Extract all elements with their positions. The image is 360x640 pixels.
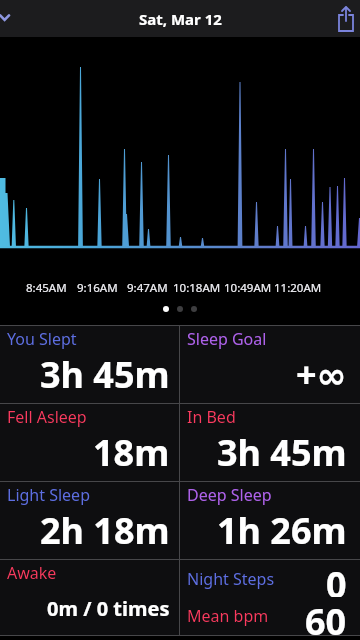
staticText: Awake [7, 562, 57, 584]
button[interactable]: You Slept [0, 326, 179, 403]
button[interactable]: Deep Sleep [180, 482, 360, 559]
staticText: 0m / 0 times [47, 595, 170, 622]
staticText: 11:20AM [274, 280, 322, 294]
staticText: In Bed [187, 406, 236, 428]
staticText: 3h 45m [40, 350, 170, 399]
staticText: 1h 26m [217, 506, 347, 555]
button[interactable]: Night Steps [180, 560, 360, 635]
staticText: Fell Asleep [7, 406, 87, 428]
button[interactable]: Light Sleep [0, 482, 179, 559]
staticText: Light Sleep [7, 484, 90, 506]
staticText: 8:45AM [26, 280, 67, 294]
staticText: 18m [93, 428, 170, 477]
staticText: Mean bpm [187, 605, 269, 627]
staticText: +∞ [296, 350, 347, 399]
button[interactable]: Sleep Goal [180, 326, 360, 403]
button[interactable]: Awake [0, 560, 179, 635]
staticText: Sat, Mar 12 [139, 9, 222, 29]
staticText: 2h 18m [40, 506, 170, 555]
button[interactable]: Fell Asleep [0, 404, 179, 481]
button[interactable]: In Bed [180, 404, 360, 481]
button[interactable] [334, 2, 358, 36]
staticText: 60 [305, 597, 347, 635]
staticText: 9:16AM [77, 280, 118, 294]
staticText: 3h 45m [217, 428, 347, 477]
staticText: Deep Sleep [187, 484, 272, 506]
staticText: 10:49AM [224, 280, 272, 294]
staticText: 10:18AM [173, 280, 221, 294]
staticText: Night Steps [187, 568, 275, 590]
staticText: 9:47AM [127, 280, 168, 294]
button[interactable] [0, 8, 22, 30]
staticText: You Slept [7, 328, 77, 350]
staticText: Sleep Goal [187, 328, 267, 350]
staticText: 0 [326, 560, 347, 597]
